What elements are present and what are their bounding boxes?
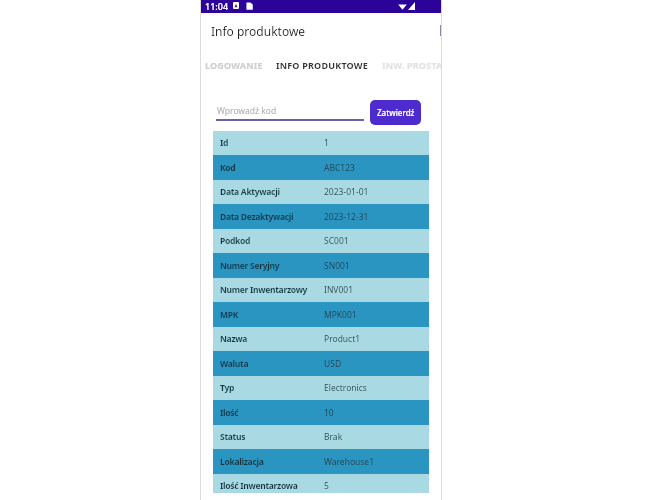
staticText: INW. PROSTA <box>382 59 441 71</box>
button[interactable]: Data Dezaktywacji <box>213 204 429 229</box>
staticText: Data Aktywacji <box>220 186 324 198</box>
staticText: Podkod <box>220 235 324 247</box>
staticText: Id <box>220 137 324 149</box>
button[interactable]: Podkod <box>213 229 429 253</box>
button[interactable]: Wprowadź kod <box>216 105 364 121</box>
staticText: Waluta <box>220 358 324 370</box>
staticText: INV001 <box>324 284 354 296</box>
button[interactable]: Status <box>213 425 429 449</box>
staticText: 1 <box>324 137 329 149</box>
button[interactable]: Kod <box>213 155 429 180</box>
staticText: 2023-12-31 <box>324 211 369 223</box>
staticText: 10 <box>324 407 334 419</box>
staticText: Ilość Inwentarzowa <box>220 480 324 492</box>
button[interactable]: Lokalizacja <box>213 449 429 474</box>
button[interactable]: Waluta <box>213 351 429 376</box>
staticText: SC001 <box>324 235 349 247</box>
staticText: MPK <box>220 309 324 321</box>
button[interactable]: Typ <box>213 376 429 400</box>
button[interactable]: Numer Inwentarzowy <box>213 278 429 302</box>
button[interactable]: LOGOWANIE <box>205 54 262 76</box>
staticText: 5 <box>324 480 329 492</box>
staticText: Product1 <box>324 333 361 345</box>
button[interactable]: Ilość <box>213 400 429 425</box>
staticText: 11:04 <box>205 0 229 12</box>
button[interactable]: Id <box>213 131 429 155</box>
staticText: Warehouse1 <box>324 456 375 468</box>
staticText: Lokalizacja <box>220 456 324 468</box>
staticText: Brak <box>324 431 343 443</box>
staticText: Nazwa <box>220 333 324 345</box>
staticText: Zatwierdź <box>377 107 415 118</box>
button[interactable]: INW. PROSTA <box>379 54 441 76</box>
staticText: USD <box>324 358 342 370</box>
staticText: SN001 <box>324 260 350 272</box>
staticText: Info produktowe <box>211 23 306 39</box>
staticText: Ilość <box>220 407 324 419</box>
staticText: Data Dezaktywacji <box>220 211 324 223</box>
button[interactable]: Nazwa <box>213 327 429 351</box>
staticText: Kod <box>220 162 324 174</box>
staticText: ABC123 <box>324 162 355 174</box>
staticText: Status <box>220 431 324 443</box>
button[interactable]: Zatwierdź <box>370 100 421 125</box>
button[interactable]: Ilość Inwentarzowa <box>213 474 429 493</box>
staticText: Numer Seryjny <box>220 260 324 272</box>
button[interactable]: Data Aktywacji <box>213 180 429 204</box>
staticText: Numer Inwentarzowy <box>220 284 324 296</box>
staticText: Electronics <box>324 382 367 394</box>
staticText: LOGOWANIE <box>205 59 262 71</box>
staticText: INFO PRODUKTOWE <box>276 59 368 71</box>
staticText: Wprowadź kod <box>217 105 277 117</box>
staticText: Typ <box>220 382 324 394</box>
button[interactable]: INFO PRODUKTOWE <box>276 54 368 76</box>
button[interactable]: Numer Seryjny <box>213 253 429 278</box>
staticText: MPK001 <box>324 309 357 321</box>
button[interactable]: MPK <box>213 302 429 327</box>
staticText: 2023-01-01 <box>324 186 369 198</box>
